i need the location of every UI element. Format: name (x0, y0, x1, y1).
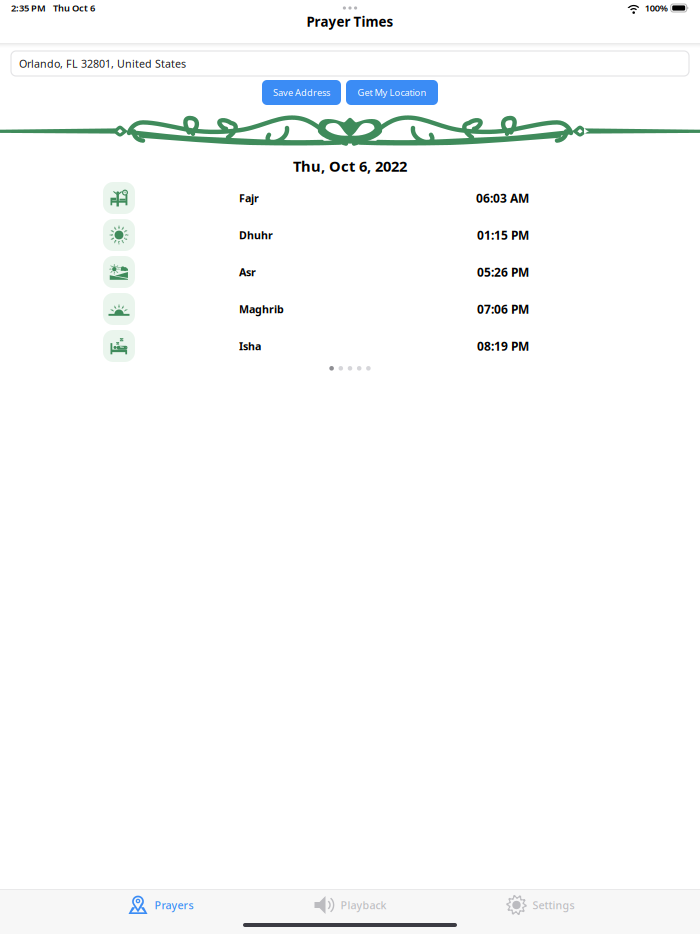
staticText: Thu, Oct 6, 2022 (293, 156, 407, 176)
staticText: 08:19 PM (477, 338, 529, 354)
staticText: Asr (239, 265, 256, 279)
staticText: 05:26 PM (477, 264, 529, 280)
staticText: Isha (239, 339, 261, 353)
button[interactable]: Get My Location (346, 80, 438, 105)
staticText: Dhuhr (239, 228, 273, 242)
button[interactable]: Settings (445, 890, 635, 920)
staticText: Fajr (239, 191, 259, 205)
staticText: Settings (532, 898, 574, 912)
staticText: Prayers (154, 898, 193, 912)
button[interactable]: Playback (255, 890, 445, 920)
staticText: Playback (340, 898, 386, 912)
staticText: 07:06 PM (477, 301, 529, 317)
staticText: Orlando, FL 32801, United States (19, 56, 186, 71)
staticText: 06:03 AM (476, 190, 529, 206)
button[interactable]: Prayers (65, 890, 255, 920)
staticText: Thu Oct 6 (53, 2, 95, 14)
staticText: 100% (645, 2, 668, 14)
staticText: Maghrib (239, 302, 284, 316)
staticText: Prayer Times (306, 13, 393, 30)
staticText: Get My Location (357, 86, 426, 99)
staticText: Save Address (273, 86, 330, 99)
button[interactable]: Save Address (262, 80, 341, 105)
staticText: 01:15 PM (477, 227, 529, 243)
staticText: 2:35 PM (11, 2, 46, 14)
